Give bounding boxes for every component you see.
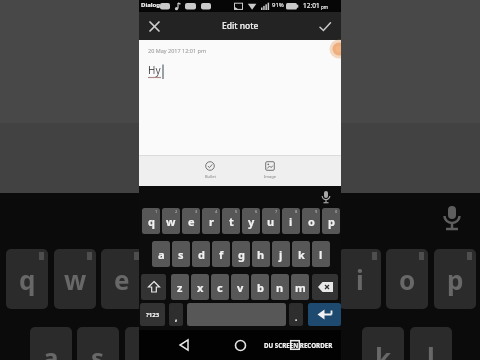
button[interactable]: Image — [255, 161, 285, 185]
button[interactable]: d — [192, 241, 210, 267]
staticText: l — [319, 247, 323, 262]
staticText: Image — [264, 174, 277, 179]
staticText: c — [217, 280, 223, 295]
staticText: Dialog — [141, 1, 161, 9]
staticText: pm — [321, 4, 328, 10]
button[interactable] — [312, 274, 338, 300]
button[interactable]: i — [282, 208, 300, 234]
staticText: 8 — [295, 209, 298, 214]
staticText: i — [356, 262, 364, 297]
staticText: o — [399, 262, 416, 297]
staticText: 1 — [155, 209, 158, 214]
staticText: l — [427, 340, 435, 360]
button[interactable]: o — [302, 208, 320, 234]
button[interactable]: l — [312, 241, 330, 267]
button[interactable] — [229, 334, 251, 356]
button[interactable] — [173, 334, 195, 356]
staticText: 3 — [195, 209, 198, 214]
staticText: k — [375, 340, 392, 360]
staticText: 0 — [335, 209, 338, 214]
staticText: w — [64, 262, 87, 297]
button[interactable]: c — [211, 274, 229, 300]
staticText: r — [209, 214, 214, 229]
staticText: e — [114, 262, 130, 297]
staticText: 12:01 — [303, 1, 320, 10]
staticText: a — [158, 247, 165, 262]
staticText: 2 — [175, 209, 178, 214]
staticText: 9 — [315, 209, 318, 214]
staticText: . — [295, 312, 298, 323]
button[interactable]: ?123 — [140, 303, 165, 326]
button[interactable] — [308, 303, 341, 326]
staticText: ?123 — [146, 311, 160, 319]
staticText: Hy — [148, 63, 161, 77]
button[interactable]: u — [262, 208, 280, 234]
button[interactable]: k — [292, 241, 310, 267]
button[interactable]: g — [232, 241, 250, 267]
staticText: 6 — [255, 209, 258, 214]
button[interactable]: z — [171, 274, 189, 300]
button[interactable]: x — [191, 274, 209, 300]
button[interactable]: b — [251, 274, 269, 300]
staticText: e — [188, 214, 195, 229]
staticText: j — [279, 247, 283, 262]
button[interactable] — [316, 17, 334, 35]
staticText: d — [198, 247, 205, 262]
staticText: 5 — [235, 209, 238, 214]
staticText: f — [219, 247, 224, 262]
button[interactable]: e — [182, 208, 200, 234]
staticText: q — [19, 262, 36, 297]
staticText: u — [267, 214, 275, 229]
button[interactable]: Bullet — [195, 161, 225, 185]
staticText: Bullet — [205, 174, 216, 179]
button[interactable]: p — [322, 208, 340, 234]
staticText: v — [237, 280, 244, 295]
staticText: 20 May 2017 12:01 pm — [148, 47, 207, 54]
button[interactable]: r — [202, 208, 220, 234]
button[interactable] — [141, 274, 166, 300]
staticText: z — [177, 280, 183, 295]
staticText: x — [197, 280, 204, 295]
staticText: a — [43, 340, 59, 360]
button[interactable]: y — [242, 208, 260, 234]
staticText: h — [257, 247, 265, 262]
button[interactable] — [284, 334, 306, 356]
staticText: o — [308, 214, 315, 229]
staticText: w — [166, 214, 176, 229]
button[interactable]: v — [231, 274, 249, 300]
staticText: 91% — [272, 1, 284, 9]
staticText: 4 — [215, 209, 218, 214]
staticText: 7 — [275, 209, 278, 214]
staticText: s — [91, 340, 105, 360]
button[interactable]: n — [271, 274, 289, 300]
staticText: n — [276, 280, 284, 295]
button[interactable]: j — [272, 241, 290, 267]
staticText: Edit note — [222, 20, 259, 32]
staticText: , — [175, 312, 178, 323]
staticText: g — [238, 247, 245, 262]
button[interactable] — [145, 17, 163, 35]
staticText: p — [328, 214, 335, 229]
staticText: p — [447, 262, 464, 297]
button[interactable]: t — [222, 208, 240, 234]
button[interactable]: , — [169, 303, 183, 326]
button[interactable]: . — [289, 303, 303, 326]
button[interactable]: q — [142, 208, 160, 234]
button[interactable]: f — [212, 241, 230, 267]
staticText: k — [298, 247, 305, 262]
button[interactable]: w — [162, 208, 180, 234]
staticText: i — [289, 214, 293, 229]
staticText: DU SCREEN RECORDER — [264, 341, 333, 349]
button[interactable]: a — [152, 241, 170, 267]
staticText: s — [178, 247, 184, 262]
staticText: q — [148, 214, 155, 229]
staticText: m — [295, 280, 306, 295]
staticText: t — [229, 214, 234, 229]
button[interactable]: s — [172, 241, 190, 267]
button[interactable]: m — [291, 274, 309, 300]
button[interactable] — [317, 188, 335, 206]
button[interactable]: h — [252, 241, 270, 267]
staticText: d — [138, 340, 155, 360]
staticText: y — [248, 214, 255, 229]
